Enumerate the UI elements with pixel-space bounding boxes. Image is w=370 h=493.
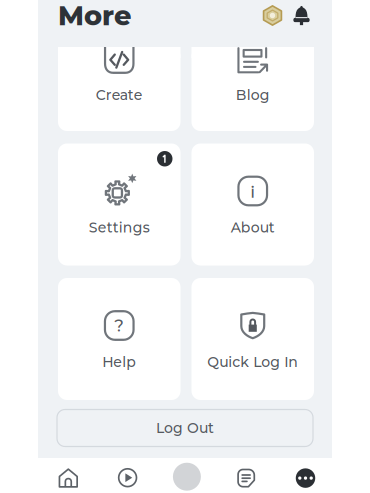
button[interactable]: Log Out (57, 409, 313, 446)
staticText: About (231, 219, 275, 236)
button[interactable]: Feed (217, 458, 276, 493)
staticText: Quick Log In (207, 353, 298, 371)
button[interactable]: Blog (191, 47, 314, 131)
button[interactable]: Home (39, 458, 98, 493)
button[interactable]: Profile (157, 458, 216, 493)
staticText: Settings (89, 219, 150, 236)
staticText: Help (102, 353, 136, 371)
button[interactable]: Quick Log In (191, 278, 314, 400)
staticText: i (250, 181, 255, 202)
button[interactable]: Rewards (260, 2, 284, 28)
staticText: Blog (236, 86, 270, 104)
button[interactable]: i (191, 143, 314, 265)
button[interactable]: ? (58, 278, 180, 400)
button[interactable]: More (276, 458, 335, 493)
staticText: Log Out (156, 419, 214, 437)
staticText: ? (114, 315, 124, 336)
button[interactable]: Watch (98, 458, 157, 493)
staticText: Create (96, 86, 143, 104)
button[interactable]: Create (58, 47, 180, 131)
button[interactable]: Notifications (291, 2, 312, 28)
button[interactable]: Settings (58, 143, 180, 265)
staticText: More (58, 0, 131, 32)
